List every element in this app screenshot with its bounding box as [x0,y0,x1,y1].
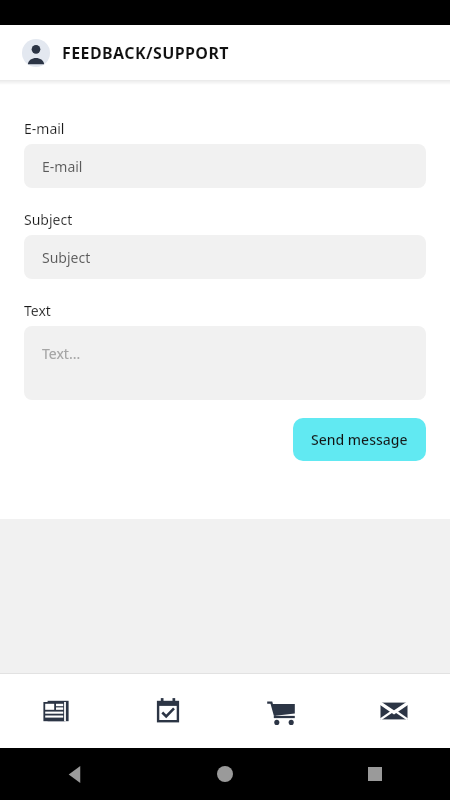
staticText: FEEDBACK/SUPPORT [62,42,229,64]
staticText: Text [24,301,51,320]
staticText: Subject [24,210,73,229]
button[interactable]: E-mail [24,144,426,188]
button[interactable]: Subject [24,235,426,279]
staticText: Text... [42,344,81,363]
button[interactable]: Cart [224,674,337,748]
button[interactable]: Messages [337,674,450,748]
button[interactable]: Profile [22,39,50,67]
button[interactable]: Text... [24,326,426,400]
staticText: E-mail [42,157,83,176]
button[interactable]: Calendar [112,674,224,748]
button[interactable]: Send message [293,418,426,461]
staticText: E-mail [24,119,65,138]
staticText: Send message [311,430,408,449]
button[interactable]: News [0,674,112,748]
staticText: Subject [42,248,91,267]
